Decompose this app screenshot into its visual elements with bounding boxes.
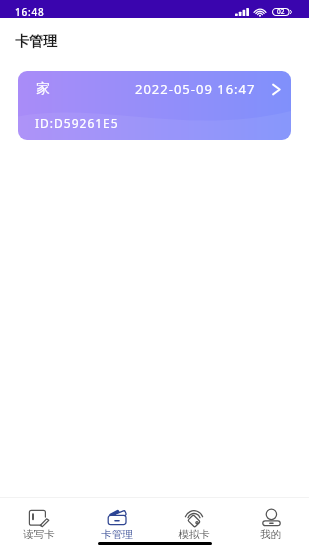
staticText: ID:D59261E5	[35, 115, 119, 131]
staticText: 模拟卡	[178, 528, 210, 539]
staticText: 我的	[260, 528, 281, 539]
button[interactable]: Simulate card	[155, 498, 232, 539]
button[interactable]: Read write card	[0, 498, 78, 539]
staticText: 家	[36, 80, 50, 97]
button[interactable]: Card management	[78, 498, 155, 539]
staticText: 卡管理	[101, 528, 133, 539]
staticText: 2022-05-09 16:47	[135, 80, 256, 98]
button[interactable]: Mine	[232, 498, 309, 539]
staticText: 02	[277, 7, 285, 16]
staticText: 16:48	[15, 5, 45, 19]
button[interactable]: 家	[18, 71, 291, 140]
staticText: 卡管理	[15, 33, 57, 51]
staticText: 读写卡	[23, 528, 55, 539]
